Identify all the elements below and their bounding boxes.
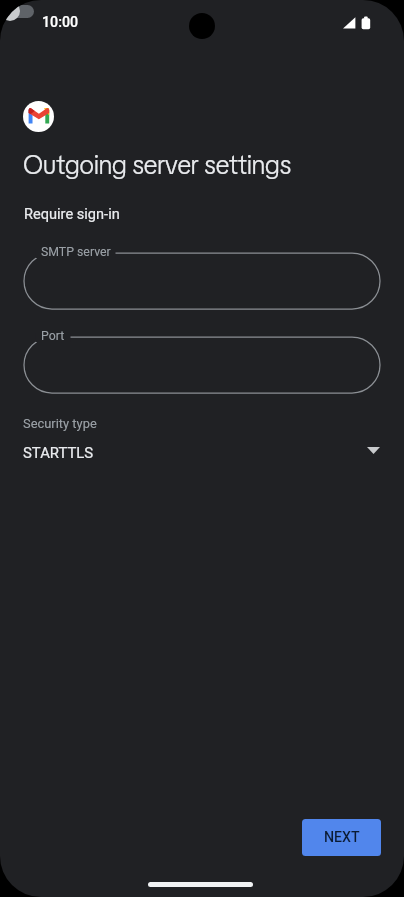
staticText: SMTP server [41,245,111,259]
staticText: NEXT [324,829,360,846]
button[interactable]: Port [24,337,380,393]
button[interactable]: SMTP server [24,253,380,309]
button[interactable]: Require sign-in [0,0,34,22]
staticText: Outgoing server settings [23,148,292,182]
staticText: Security type [23,416,97,431]
button[interactable]: Security type [0,406,404,472]
staticText: 10:00 [42,14,79,31]
staticText: Port [41,329,65,343]
staticText: STARTTLS [23,444,94,461]
staticText: Require sign-in [24,205,120,222]
button[interactable]: NEXT [302,819,381,856]
button[interactable]: Require sign-in [0,193,404,233]
